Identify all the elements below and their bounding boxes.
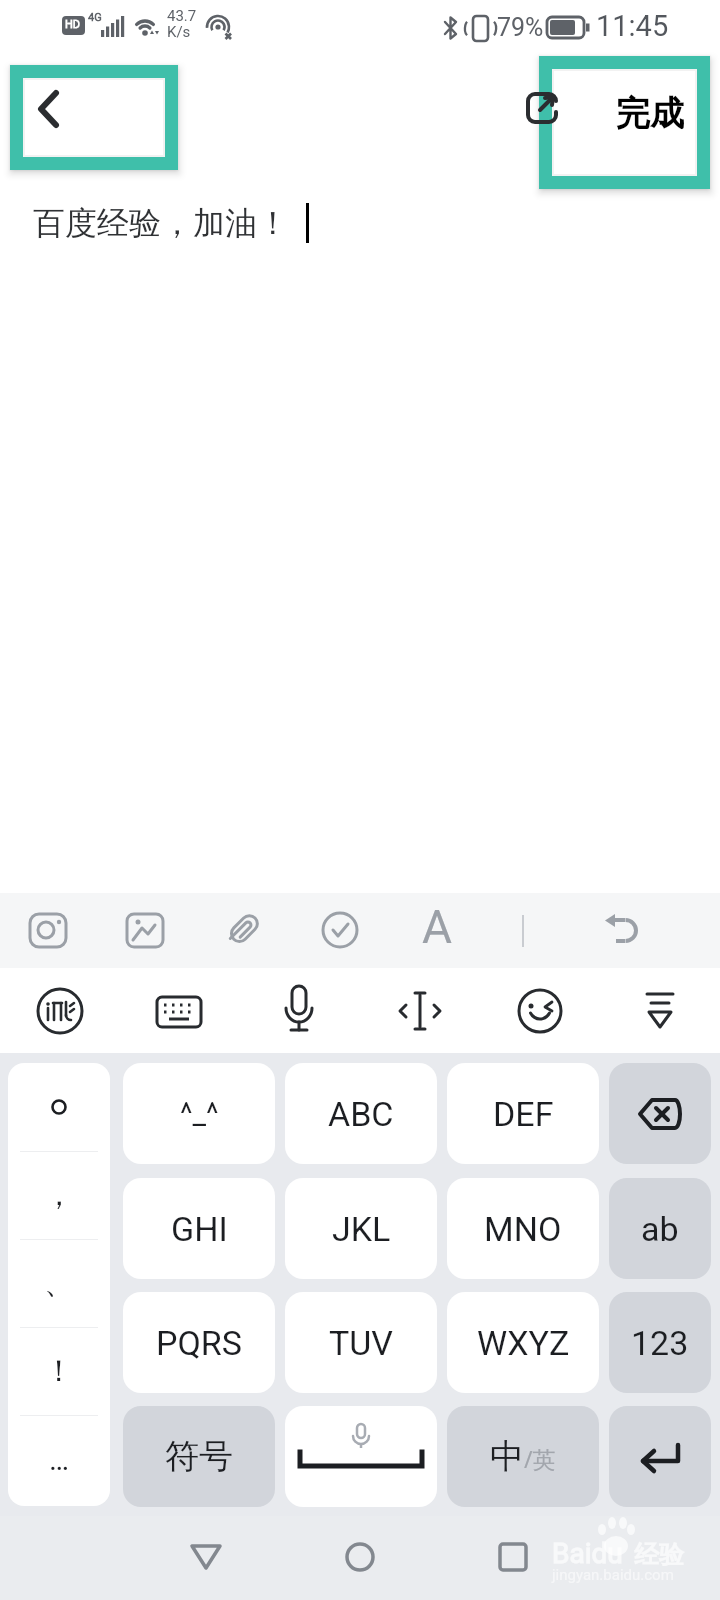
button[interactable]	[345, 1542, 375, 1572]
staticText: Baidu	[552, 1537, 623, 1570]
staticText: ABC	[328, 1094, 394, 1134]
button[interactable]: A	[422, 900, 453, 954]
staticText: 、	[44, 1264, 74, 1302]
button[interactable]: ，	[8, 1151, 110, 1239]
button[interactable]	[190, 1542, 222, 1572]
staticText: ab	[641, 1209, 679, 1249]
staticText: PQRS	[156, 1323, 242, 1363]
button[interactable]	[126, 911, 164, 949]
button[interactable]	[155, 987, 203, 1035]
staticText: 经验	[634, 1539, 684, 1570]
staticText: ^_^	[180, 1096, 219, 1131]
staticText: ！	[44, 1352, 74, 1390]
button[interactable]	[277, 984, 321, 1038]
button[interactable]	[609, 1406, 711, 1507]
button[interactable]: ^_^	[123, 1063, 275, 1164]
staticText: HD	[65, 18, 81, 31]
button[interactable]: DEF	[447, 1063, 599, 1164]
button[interactable]	[499, 1543, 527, 1571]
button[interactable]: ab	[609, 1178, 711, 1279]
button[interactable]	[10, 65, 178, 170]
staticText: jingyan.baidu.com	[552, 1566, 674, 1584]
staticText: 43.7 K/s	[167, 7, 197, 40]
button[interactable]: 中/英	[447, 1406, 599, 1507]
staticText: MNO	[484, 1209, 562, 1249]
staticText: 11:45	[596, 9, 669, 43]
button[interactable]	[224, 911, 262, 949]
button[interactable]: 123	[609, 1292, 711, 1393]
button[interactable]	[638, 990, 682, 1034]
staticText: 4G	[88, 11, 102, 24]
staticText: 79%	[497, 13, 544, 42]
staticText: 符号	[165, 1435, 233, 1478]
button[interactable]	[396, 987, 444, 1035]
staticText: 百度经验，加油！	[33, 203, 289, 243]
staticText: GHI	[171, 1209, 228, 1249]
staticText: 完成	[616, 92, 684, 135]
button[interactable]: MNO	[447, 1178, 599, 1279]
button[interactable]	[29, 911, 67, 949]
button[interactable]: 符号	[123, 1406, 275, 1507]
button[interactable]: ABC	[285, 1063, 437, 1164]
staticText: TUV	[329, 1323, 393, 1363]
button[interactable]: WXYZ	[447, 1292, 599, 1393]
staticText: WXYZ	[477, 1323, 570, 1363]
staticText: DEF	[493, 1094, 554, 1134]
staticText: 123	[631, 1323, 689, 1363]
button[interactable]: PQRS	[123, 1292, 275, 1393]
button[interactable]: GHI	[123, 1178, 275, 1279]
button[interactable]	[321, 911, 359, 949]
button[interactable]	[603, 911, 643, 949]
button[interactable]: 、	[8, 1239, 110, 1327]
staticText: …	[49, 1442, 70, 1477]
staticText: JKL	[332, 1209, 391, 1249]
button[interactable]	[516, 987, 564, 1035]
staticText: 中/英	[490, 1435, 556, 1478]
button[interactable]: JKL	[285, 1178, 437, 1279]
button[interactable]: ！	[8, 1327, 110, 1415]
button[interactable]	[36, 987, 84, 1035]
button[interactable]	[609, 1063, 711, 1164]
button[interactable]	[285, 1406, 437, 1507]
staticText: ，	[44, 1176, 74, 1214]
button[interactable]: TUV	[285, 1292, 437, 1393]
button[interactable]	[8, 1063, 110, 1151]
button[interactable]: 完成	[539, 56, 710, 189]
button[interactable]: …	[8, 1415, 110, 1503]
